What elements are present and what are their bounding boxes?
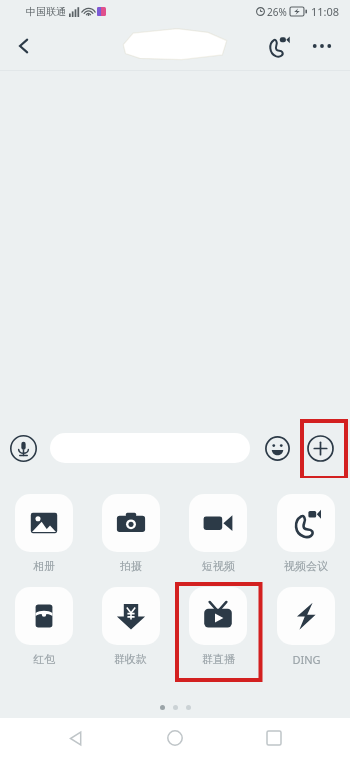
button[interactable]: Voice input <box>8 433 38 463</box>
staticText: 相册 <box>33 559 55 573</box>
staticText: DING <box>292 652 321 667</box>
staticText: 群直播 <box>202 652 235 666</box>
button[interactable]: Back <box>53 718 99 758</box>
button[interactable]: DING <box>262 587 350 667</box>
button[interactable]: 短视频 <box>174 494 262 573</box>
staticText: 红包 <box>33 652 55 666</box>
staticText: 群收款 <box>114 652 147 666</box>
button[interactable]: Video call <box>256 24 300 68</box>
button[interactable]: 红包 <box>0 587 87 666</box>
button[interactable]: 拍摄 <box>87 494 174 573</box>
staticText: 11:08 <box>311 4 340 19</box>
button[interactable]: Emoji <box>262 433 292 463</box>
button[interactable]: More actions <box>304 432 336 464</box>
staticText: 短视频 <box>202 559 235 573</box>
button[interactable]: Recent apps <box>251 718 297 758</box>
button[interactable]: More options <box>300 24 344 68</box>
staticText: 视频会议 <box>284 559 328 573</box>
staticText: 中国联通 <box>26 5 66 18</box>
button[interactable]: Back <box>0 22 48 70</box>
staticText: 26% <box>267 5 287 19</box>
button[interactable] <box>50 433 250 463</box>
button[interactable]: Home <box>152 718 198 758</box>
button[interactable]: 视频会议 <box>262 494 350 573</box>
button[interactable]: 群直播 <box>174 587 262 666</box>
staticText: 拍摄 <box>120 559 142 573</box>
button[interactable]: 相册 <box>0 494 87 573</box>
button[interactable]: 群收款 <box>87 587 174 666</box>
